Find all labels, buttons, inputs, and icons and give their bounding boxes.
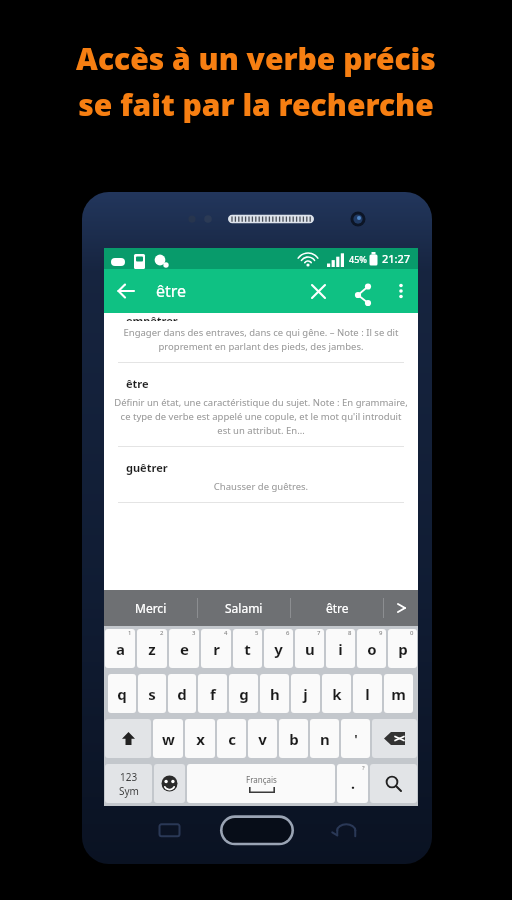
button[interactable]: f	[198, 674, 227, 713]
button[interactable]: guêtrer	[104, 447, 418, 503]
button[interactable]: Shift	[105, 719, 151, 758]
staticText: .	[351, 774, 355, 793]
staticText: être	[326, 600, 349, 616]
staticText: 123	[120, 770, 138, 784]
staticText: empêtrer	[126, 313, 178, 321]
button[interactable]: empêtrer	[104, 313, 418, 363]
button[interactable]: Search	[370, 764, 417, 803]
staticText: 21:27	[382, 251, 411, 266]
button[interactable]: Salami	[198, 590, 290, 626]
button[interactable]: k	[322, 674, 351, 713]
staticText: t	[244, 639, 251, 659]
button[interactable]: o	[357, 629, 386, 668]
button[interactable]: Back	[104, 269, 148, 313]
staticText: u	[305, 639, 315, 659]
staticText: Sym	[119, 784, 139, 798]
button[interactable]: t	[233, 629, 262, 668]
button[interactable]: w	[153, 719, 183, 758]
staticText: être	[126, 376, 149, 391]
staticText: Accès à un verbe précis	[76, 38, 436, 79]
button[interactable]: être	[104, 363, 418, 447]
button[interactable]: Share	[340, 269, 384, 313]
button[interactable]: h	[260, 674, 289, 713]
button[interactable]: i	[326, 629, 355, 668]
staticText: Chausser de guêtres.	[114, 480, 408, 493]
staticText: e	[180, 639, 189, 659]
button[interactable]: More suggestions	[384, 590, 418, 626]
button[interactable]: x	[185, 719, 215, 758]
staticText: f	[210, 684, 216, 704]
button[interactable]: u	[295, 629, 324, 668]
staticText: guêtrer	[126, 460, 168, 475]
staticText: x	[196, 729, 205, 749]
staticText: w	[162, 729, 175, 749]
staticText: n	[320, 729, 330, 749]
button[interactable]: d	[168, 674, 196, 713]
staticText: 4	[224, 629, 228, 637]
staticText: j	[303, 684, 308, 704]
staticText: g	[239, 684, 249, 704]
staticText: o	[367, 639, 377, 659]
staticText: Français	[246, 774, 277, 785]
staticText: 2	[160, 629, 164, 637]
staticText: k	[332, 684, 342, 704]
button[interactable]: Symbols	[105, 764, 152, 803]
button[interactable]: More options	[384, 274, 418, 308]
staticText: q	[117, 684, 127, 704]
staticText: Définir un état, une caractéristique du …	[114, 396, 408, 437]
staticText: d	[177, 684, 187, 704]
button[interactable]: e	[169, 629, 199, 668]
staticText: c	[228, 729, 236, 749]
staticText: h	[270, 684, 280, 704]
button[interactable]: v	[248, 719, 277, 758]
staticText: être	[156, 280, 187, 302]
button[interactable]: m	[384, 674, 413, 713]
staticText: 3	[192, 629, 196, 637]
button[interactable]: l	[353, 674, 382, 713]
staticText: ?	[362, 764, 365, 772]
button[interactable]: n	[310, 719, 339, 758]
button[interactable]: p	[388, 629, 417, 668]
staticText: a	[116, 639, 125, 659]
staticText: Engager dans des entraves, dans ce qui g…	[114, 326, 408, 353]
staticText: Merci	[135, 600, 167, 616]
button[interactable]: Merci	[104, 590, 197, 626]
staticText: i	[338, 639, 343, 659]
staticText: 6	[286, 629, 290, 637]
staticText: m	[391, 684, 406, 704]
staticText: 8	[348, 629, 352, 637]
button[interactable]: Clear	[296, 269, 340, 313]
staticText: Salami	[225, 600, 263, 616]
button[interactable]: g	[229, 674, 258, 713]
staticText: p	[398, 639, 408, 659]
button[interactable]: c	[217, 719, 246, 758]
staticText: '	[354, 730, 358, 748]
button[interactable]: Space	[187, 764, 335, 803]
button[interactable]: être	[291, 590, 383, 626]
button[interactable]: z	[137, 629, 167, 668]
button[interactable]: .	[337, 764, 368, 803]
button[interactable]: Emoji	[154, 764, 185, 803]
staticText: v	[258, 729, 267, 749]
staticText: s	[148, 684, 156, 704]
staticText: y	[274, 639, 283, 659]
button[interactable]: j	[291, 674, 320, 713]
button[interactable]: b	[279, 719, 308, 758]
staticText: l	[365, 684, 370, 704]
staticText: 5	[255, 629, 259, 637]
button[interactable]: q	[108, 674, 136, 713]
staticText: r	[213, 639, 220, 659]
button[interactable]: '	[341, 719, 370, 758]
staticText: 45%	[349, 253, 367, 265]
button[interactable]: r	[201, 629, 231, 668]
button[interactable]: a	[105, 629, 135, 668]
staticText: b	[289, 729, 299, 749]
button[interactable]: y	[264, 629, 293, 668]
button[interactable]: être	[148, 269, 296, 313]
button[interactable]: Backspace	[372, 719, 417, 758]
staticText: 0	[410, 629, 414, 637]
staticText: 1	[128, 629, 132, 637]
staticText: z	[148, 639, 156, 659]
button[interactable]: s	[138, 674, 166, 713]
staticText: 9	[379, 629, 383, 637]
